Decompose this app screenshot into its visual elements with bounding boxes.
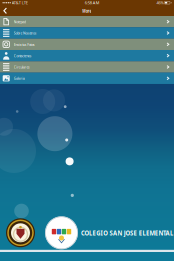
staticText: Galeria bbox=[14, 76, 27, 81]
button[interactable]: Sobre Nosotros bbox=[0, 27, 174, 39]
staticText: COLEGIO SAN JOSE ELEMENTAL bbox=[81, 228, 174, 237]
staticText: 6:58 AM bbox=[85, 0, 100, 5]
staticText: 46% bbox=[156, 0, 163, 5]
button[interactable]: Envia tus Fotos bbox=[0, 39, 174, 50]
staticText: Circulares bbox=[14, 64, 33, 70]
staticText: Notepad bbox=[14, 19, 28, 24]
button[interactable]: Circulares bbox=[0, 61, 174, 73]
button[interactable]: Galeria bbox=[0, 73, 174, 84]
staticText: AT&T LTE bbox=[12, 0, 28, 5]
button[interactable]: Back bbox=[0, 6, 13, 16]
button[interactable]: Notepad bbox=[0, 16, 174, 27]
staticText: Contactenos bbox=[14, 53, 35, 58]
staticText: More bbox=[78, 6, 95, 15]
button[interactable]: Contactenos bbox=[0, 50, 174, 61]
staticText: Envia tus Fotos bbox=[14, 42, 39, 47]
staticText: Sobre Nosotros bbox=[14, 30, 41, 36]
